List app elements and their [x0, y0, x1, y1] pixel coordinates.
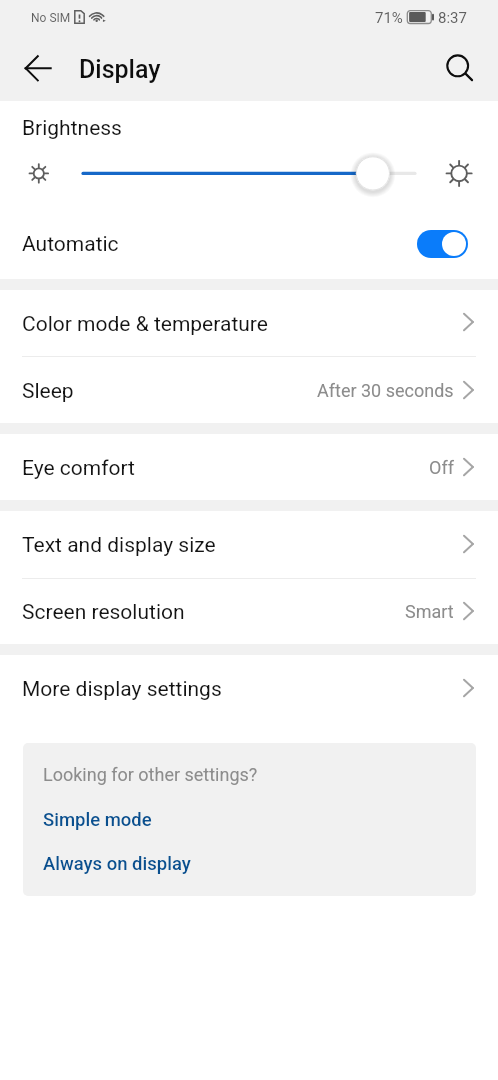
button[interactable]: More display settings: [0, 655, 498, 722]
staticText: After 30 seconds: [317, 380, 454, 401]
staticText: 8:37: [438, 9, 467, 27]
button[interactable]: Search: [434, 47, 482, 95]
button[interactable]: Screen resolution: [0, 579, 498, 644]
button[interactable]: Always on display: [43, 853, 191, 875]
staticText: Color mode & temperature: [22, 312, 268, 337]
button[interactable]: Automatic: [0, 208, 498, 279]
button[interactable]: Simple mode: [43, 809, 152, 831]
staticText: No SIM: [31, 11, 71, 25]
staticText: Automatic: [22, 232, 119, 257]
staticText: Off: [429, 457, 454, 478]
staticText: Screen resolution: [22, 600, 185, 625]
staticText: Smart: [405, 601, 454, 622]
staticText: Text and display size: [22, 533, 216, 558]
staticText: Eye comfort: [22, 456, 135, 481]
staticText: Display: [79, 55, 161, 84]
button[interactable]: Eye comfort: [0, 434, 498, 500]
button[interactable]: Sleep: [0, 357, 498, 423]
button[interactable]: Automatic brightness: [417, 230, 468, 258]
staticText: Sleep: [22, 379, 74, 404]
staticText: 71%: [375, 9, 403, 27]
button[interactable]: Color mode & temperature: [0, 290, 498, 356]
staticText: More display settings: [22, 677, 222, 702]
staticText: Brightness: [22, 116, 122, 141]
staticText: Looking for other settings?: [43, 764, 258, 785]
button[interactable]: Text and display size: [0, 511, 498, 578]
button[interactable]: Back: [14, 47, 62, 95]
